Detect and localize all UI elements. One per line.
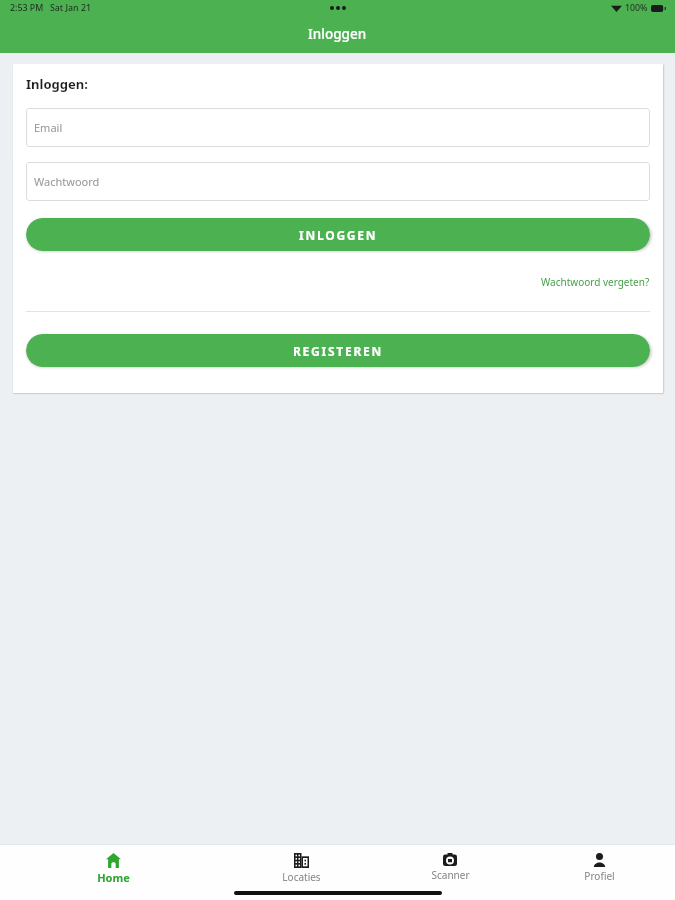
staticText: Inloggen: bbox=[26, 75, 88, 93]
button[interactable]: REGISTEREN bbox=[26, 334, 650, 367]
staticText: 2:53 PM bbox=[10, 2, 44, 14]
button[interactable]: Wachtwoord bbox=[26, 162, 650, 201]
staticText: Wachtwoord bbox=[34, 174, 100, 189]
button[interactable]: INLOGGEN bbox=[26, 218, 650, 251]
staticText: Wachtwoord vergeten? bbox=[541, 275, 650, 289]
staticText: Locaties bbox=[282, 870, 321, 884]
staticText: INLOGGEN bbox=[299, 227, 378, 243]
staticText: Profiel bbox=[584, 869, 615, 883]
button[interactable]: Scanner bbox=[376, 852, 524, 882]
button[interactable]: Wachtwoord vergeten? bbox=[541, 275, 650, 289]
staticText: Sat Jan 21 bbox=[50, 2, 91, 14]
button[interactable]: Locaties bbox=[226, 852, 376, 884]
button[interactable]: Home bbox=[0, 852, 226, 885]
staticText: Scanner bbox=[431, 868, 470, 882]
button[interactable]: Email bbox=[26, 108, 650, 147]
staticText: REGISTEREN bbox=[293, 343, 384, 359]
staticText: Inloggen bbox=[308, 25, 367, 43]
staticText: Home bbox=[97, 870, 130, 885]
staticText: Email bbox=[34, 120, 63, 135]
button[interactable]: Profiel bbox=[524, 852, 675, 883]
staticText: 100% bbox=[625, 2, 648, 14]
